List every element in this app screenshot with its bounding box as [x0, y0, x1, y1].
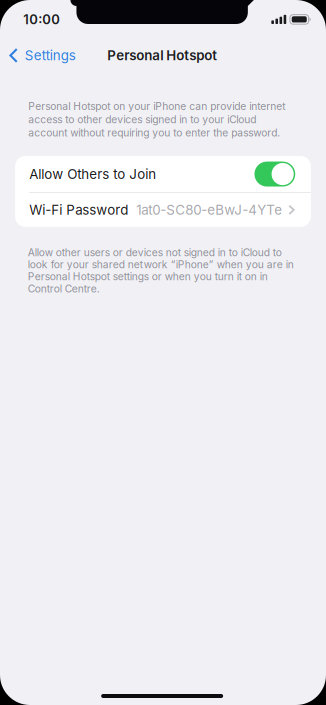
button[interactable]: Allow Others to Join — [15, 156, 311, 192]
staticText: Personal Hotspot on your iPhone can prov… — [28, 100, 285, 139]
staticText: Personal Hotspot — [107, 47, 217, 63]
button[interactable]: Settings — [0, 42, 86, 68]
staticText: Wi-Fi Password — [29, 202, 128, 218]
staticText: Allow Others to Join — [29, 166, 156, 182]
staticText: 10:00 — [23, 11, 60, 27]
button[interactable]: Wi-Fi Password — [15, 193, 311, 227]
staticText: Allow other users or devices not signed … — [28, 246, 294, 295]
staticText: Settings — [25, 47, 76, 63]
staticText: 1at0-SC80-eBwJ-4YTe — [136, 202, 282, 218]
